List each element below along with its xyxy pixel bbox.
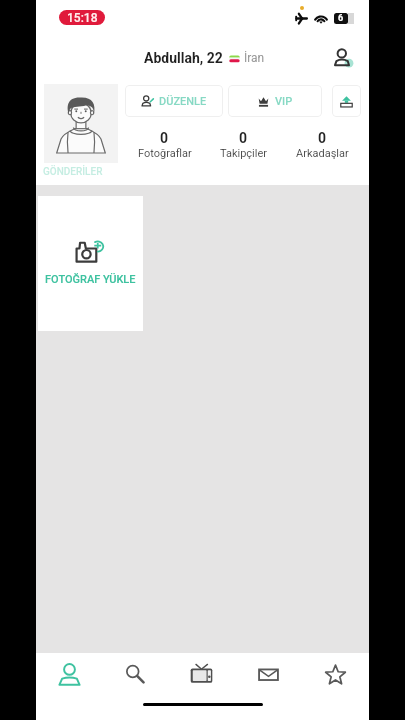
button[interactable]: DÜZENLE (125, 85, 223, 117)
staticText: 0 (318, 130, 327, 146)
staticText: Abdullah, 22 (144, 50, 223, 66)
button[interactable]: Search (102, 653, 168, 695)
button[interactable]: 0 (283, 130, 362, 160)
staticText: 0 (239, 130, 248, 146)
button[interactable]: Favorites (302, 653, 369, 695)
button[interactable]: VIP (228, 85, 322, 117)
staticText: VIP (275, 95, 293, 108)
button[interactable]: FOTOĞRAF YÜKLE (38, 196, 143, 331)
staticText: 15:18 (67, 11, 98, 25)
button[interactable]: Profile (36, 653, 102, 695)
button[interactable]: Avatar (44, 84, 118, 163)
staticText: Arkadaşlar (296, 147, 349, 160)
staticText: Fotoğraflar (138, 147, 192, 160)
button[interactable]: GÖNDERİLER (43, 166, 103, 178)
button[interactable]: 0 (204, 130, 283, 160)
button[interactable]: Profile (328, 43, 358, 73)
staticText: İran (244, 51, 265, 65)
button[interactable]: Messages (235, 653, 302, 695)
staticText: 6 (338, 13, 344, 24)
staticText: 0 (160, 130, 169, 146)
button[interactable]: TV (168, 653, 235, 695)
button[interactable]: 0 (125, 130, 204, 160)
staticText: DÜZENLE (159, 95, 207, 108)
button[interactable]: Upload (332, 85, 361, 117)
staticText: Takipçiler (220, 147, 268, 160)
staticText: FOTOĞRAF YÜKLE (45, 273, 136, 286)
